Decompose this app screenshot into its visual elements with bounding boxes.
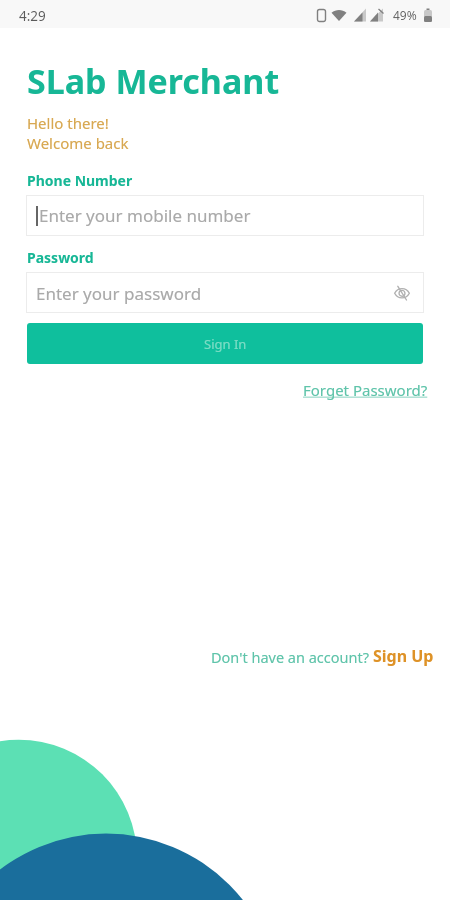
- staticText: Sign In: [204, 335, 247, 353]
- staticText: SLab Merchant: [27, 58, 280, 104]
- button[interactable]: Enter your password: [26, 272, 424, 313]
- staticText: Password: [27, 248, 94, 267]
- button[interactable]: Sign In: [27, 323, 423, 364]
- staticText: Forget Password?: [303, 380, 428, 400]
- staticText: Welcome back: [27, 133, 129, 153]
- button[interactable]: Sign Up: [373, 645, 434, 667]
- staticText: Enter your mobile number: [39, 204, 251, 227]
- staticText: 4:29: [19, 7, 46, 25]
- staticText: Phone Number: [27, 171, 133, 190]
- button[interactable]: Forget Password?: [303, 380, 428, 400]
- staticText: Enter your password: [36, 282, 202, 305]
- staticText: Hello there!: [27, 113, 109, 133]
- button[interactable]: Show password: [387, 278, 417, 308]
- staticText: 49%: [393, 7, 417, 23]
- staticText: Sign Up: [373, 645, 434, 667]
- staticText: Don't have an account?: [211, 647, 373, 667]
- button[interactable]: Enter your mobile number: [26, 195, 424, 236]
